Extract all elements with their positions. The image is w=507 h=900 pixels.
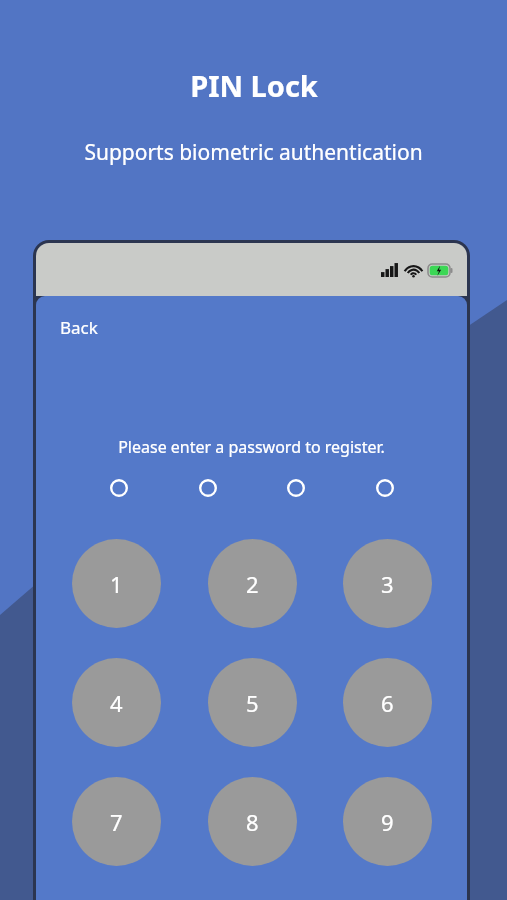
button[interactable]: Key 3: [343, 539, 432, 628]
button[interactable]: Key 7: [72, 777, 161, 866]
button[interactable]: Key 4: [72, 658, 161, 747]
button[interactable]: Key 8: [208, 777, 297, 866]
button[interactable]: Key 5: [208, 658, 297, 747]
button[interactable]: Key 2: [208, 539, 297, 628]
staticText: 4: [110, 688, 123, 718]
staticText: Back: [60, 316, 98, 339]
staticText: 8: [246, 807, 259, 837]
staticText: 6: [381, 688, 394, 718]
staticText: 2: [246, 569, 259, 599]
staticText: 7: [110, 807, 123, 837]
staticText: Please enter a password to register.: [118, 436, 385, 458]
button[interactable]: Back: [48, 310, 110, 345]
staticText: 9: [381, 807, 394, 837]
staticText: Supports biometric authentication: [84, 138, 423, 167]
button[interactable]: Key 6: [343, 658, 432, 747]
staticText: 1: [110, 569, 123, 599]
button[interactable]: Key 1: [72, 539, 161, 628]
button[interactable]: Key 9: [343, 777, 432, 866]
staticText: 3: [381, 569, 394, 599]
staticText: 5: [246, 688, 259, 718]
staticText: PIN Lock: [190, 66, 318, 105]
